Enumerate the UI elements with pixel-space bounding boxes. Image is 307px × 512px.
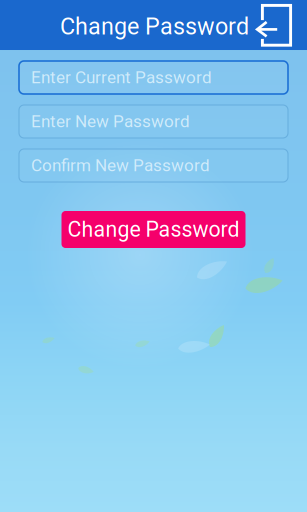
staticText: Enter New Password xyxy=(31,111,190,131)
staticText: Enter Current Password xyxy=(31,67,212,87)
button[interactable]: Change Password xyxy=(61,211,245,248)
staticText: Change Password xyxy=(67,217,239,242)
staticText: Confirm New Password xyxy=(31,155,210,175)
button[interactable]: Sign out xyxy=(256,0,292,50)
staticText: Change Password xyxy=(60,13,249,40)
button[interactable]: Confirm New Password xyxy=(19,149,288,182)
button[interactable]: Enter New Password xyxy=(19,105,288,138)
button[interactable]: Enter Current Password xyxy=(19,61,288,94)
